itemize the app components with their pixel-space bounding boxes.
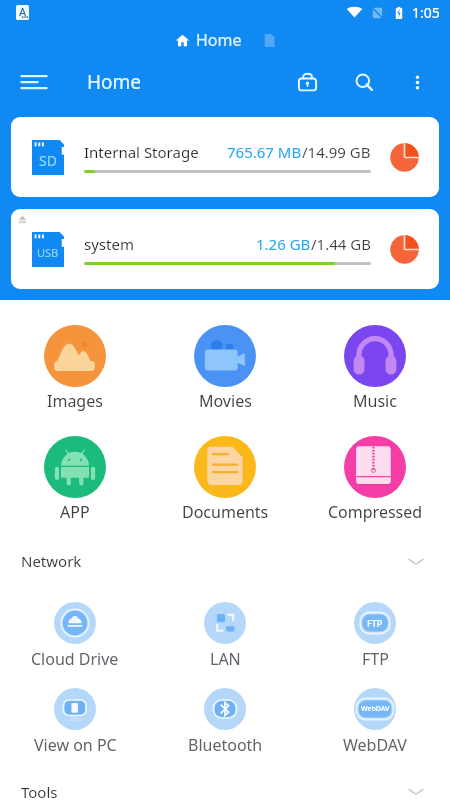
button[interactable]: Home (172, 29, 245, 51)
button[interactable]: WebDAV (300, 682, 450, 762)
staticText: Home (196, 29, 242, 51)
staticText: Documents (182, 501, 269, 523)
button[interactable]: Eject (11, 209, 439, 289)
staticText: Tools (21, 782, 58, 800)
button[interactable]: Music (300, 321, 450, 416)
button[interactable]: APP (0, 432, 150, 527)
button[interactable]: Compressed (300, 432, 450, 527)
staticText: Bluetooth (188, 734, 263, 756)
staticText: 765.67 MB (227, 142, 302, 162)
button[interactable]: Bluetooth (150, 682, 300, 762)
staticText: Compressed (328, 501, 423, 523)
staticText: Network (21, 551, 82, 571)
staticText: Cloud Drive (31, 648, 119, 670)
staticText: /14.99 GB (302, 142, 371, 162)
button[interactable]: Network (0, 548, 450, 574)
button[interactable]: Menu (9, 57, 59, 107)
staticText: FTP (362, 648, 389, 670)
button[interactable]: SD (11, 117, 439, 197)
staticText: Movies (199, 390, 252, 412)
button[interactable]: FTP (300, 596, 450, 676)
staticText: Images (47, 390, 103, 412)
button[interactable]: More options (397, 62, 437, 102)
staticText: View on PC (34, 734, 117, 756)
staticText: LAN (210, 648, 241, 670)
button[interactable]: Documents (150, 432, 300, 527)
staticText: /1.44 GB (311, 234, 371, 254)
button[interactable]: LAN (150, 596, 300, 676)
staticText: USB (37, 245, 59, 260)
button[interactable]: View on PC (0, 682, 150, 762)
staticText: Internal Storage (84, 142, 199, 162)
button[interactable]: Search (340, 58, 388, 106)
staticText: 1:05 (412, 3, 440, 22)
button[interactable]: Images (0, 321, 150, 416)
button[interactable]: Cloud Drive (0, 596, 150, 676)
staticText: A (19, 5, 27, 19)
button[interactable]: Movies (150, 321, 300, 416)
button[interactable]: Lock (283, 58, 331, 106)
staticText: WebDAV (343, 734, 407, 756)
button[interactable]: Tools (0, 782, 450, 800)
button[interactable]: File (261, 32, 278, 49)
staticText: Music (353, 390, 397, 412)
staticText: WebDAV (361, 704, 390, 714)
button[interactable]: Eject (14, 211, 31, 228)
staticText: FTP (367, 617, 383, 629)
staticText: Home (87, 69, 142, 95)
staticText: 1.26 GB (256, 234, 311, 254)
staticText: APP (60, 501, 90, 523)
staticText: system (84, 234, 134, 254)
staticText: SD (39, 151, 57, 170)
